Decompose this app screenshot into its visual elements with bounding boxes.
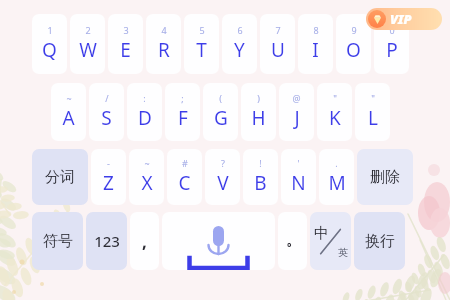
button[interactable]: 3 bbox=[108, 14, 143, 74]
staticText: @ bbox=[292, 92, 301, 104]
button[interactable]: ) bbox=[241, 83, 276, 141]
staticText: W bbox=[79, 37, 97, 63]
button[interactable]: VIP bbox=[366, 8, 442, 30]
staticText: 。 bbox=[286, 232, 300, 250]
staticText: 符号 bbox=[43, 232, 73, 251]
staticText: . bbox=[335, 157, 338, 169]
staticText: L bbox=[368, 105, 378, 131]
button[interactable]: Space and voice input bbox=[162, 212, 275, 270]
staticText: Y bbox=[234, 37, 245, 63]
button[interactable]: ~ bbox=[129, 149, 164, 205]
staticText: M bbox=[328, 170, 346, 196]
staticText: 5 bbox=[199, 24, 205, 36]
staticText: ( bbox=[219, 92, 222, 104]
staticText: 7 bbox=[275, 24, 281, 36]
button[interactable]: 1 bbox=[32, 14, 67, 74]
button[interactable]: 2 bbox=[70, 14, 105, 74]
staticText: ) bbox=[257, 92, 260, 104]
button[interactable]: 5 bbox=[184, 14, 219, 74]
staticText: E bbox=[120, 37, 131, 63]
staticText: ; bbox=[181, 92, 184, 104]
button[interactable]: ( bbox=[203, 83, 238, 141]
staticText: N bbox=[291, 170, 306, 196]
staticText: 分词 bbox=[45, 168, 75, 187]
staticText: " bbox=[333, 92, 337, 104]
button[interactable]: @ bbox=[279, 83, 314, 141]
button[interactable]: Comma bbox=[130, 212, 159, 270]
staticText: C bbox=[178, 170, 191, 196]
staticText: 换行 bbox=[365, 232, 395, 251]
button[interactable]: 0 bbox=[374, 14, 409, 74]
button[interactable]: 123 bbox=[86, 212, 127, 270]
staticText: R bbox=[158, 37, 170, 63]
button[interactable]: 删除 bbox=[357, 149, 413, 205]
staticText: # bbox=[182, 157, 188, 169]
staticText: ? bbox=[221, 157, 225, 169]
staticText: 1 bbox=[47, 24, 53, 36]
staticText: - bbox=[107, 157, 110, 169]
staticText: ~ bbox=[144, 157, 150, 169]
staticText: H bbox=[251, 105, 266, 131]
staticText: " bbox=[371, 92, 375, 104]
button[interactable]: 4 bbox=[146, 14, 181, 74]
staticText: ! bbox=[259, 157, 262, 169]
button[interactable]: . bbox=[319, 149, 354, 205]
staticText: Z bbox=[103, 170, 114, 196]
staticText: B bbox=[254, 170, 267, 196]
button[interactable]: : bbox=[127, 83, 162, 141]
button[interactable]: # bbox=[167, 149, 202, 205]
button[interactable]: 符号 bbox=[32, 212, 83, 270]
staticText: K bbox=[329, 105, 341, 131]
button[interactable]: " bbox=[355, 83, 390, 141]
staticText: 3 bbox=[123, 24, 129, 36]
staticText: 9 bbox=[351, 24, 357, 36]
button[interactable]: Switch Chinese English bbox=[310, 212, 351, 270]
staticText: 4 bbox=[161, 24, 167, 36]
staticText: J bbox=[294, 105, 300, 131]
button[interactable]: " bbox=[317, 83, 352, 141]
staticText: T bbox=[196, 37, 207, 63]
staticText: I bbox=[312, 37, 319, 63]
staticText: 6 bbox=[237, 24, 243, 36]
staticText: 2 bbox=[85, 24, 91, 36]
staticText: X bbox=[141, 170, 153, 196]
button[interactable]: 8 bbox=[298, 14, 333, 74]
button[interactable]: ' bbox=[281, 149, 316, 205]
button[interactable]: 9 bbox=[336, 14, 371, 74]
staticText: O bbox=[346, 37, 361, 63]
button[interactable]: 7 bbox=[260, 14, 295, 74]
staticText: VIP bbox=[390, 10, 412, 28]
button[interactable]: ? bbox=[205, 149, 240, 205]
button[interactable]: ~ bbox=[51, 83, 86, 141]
button[interactable]: 分词 bbox=[32, 149, 88, 205]
staticText: S bbox=[101, 105, 112, 131]
staticText: / bbox=[105, 92, 109, 104]
staticText: U bbox=[271, 37, 285, 63]
button[interactable]: 6 bbox=[222, 14, 257, 74]
staticText: Q bbox=[42, 37, 57, 63]
staticText: 8 bbox=[313, 24, 319, 36]
staticText: 删除 bbox=[370, 168, 400, 187]
staticText: A bbox=[62, 105, 75, 131]
staticText: 中 bbox=[314, 224, 329, 243]
staticText: : bbox=[143, 92, 146, 104]
staticText: V bbox=[217, 170, 229, 196]
button[interactable]: - bbox=[91, 149, 126, 205]
staticText: G bbox=[214, 105, 228, 131]
staticText: ' bbox=[297, 157, 300, 169]
button[interactable]: ; bbox=[165, 83, 200, 141]
staticText: F bbox=[178, 105, 188, 131]
staticText: 123 bbox=[94, 231, 120, 251]
staticText: D bbox=[138, 105, 152, 131]
staticText: P bbox=[386, 37, 398, 63]
staticText: 英 bbox=[338, 246, 348, 259]
button[interactable]: ! bbox=[243, 149, 278, 205]
staticText: 0 bbox=[389, 24, 395, 36]
button[interactable]: 换行 bbox=[354, 212, 405, 270]
staticText: ~ bbox=[66, 92, 72, 104]
button[interactable]: Period bbox=[278, 212, 307, 270]
button[interactable]: / bbox=[89, 83, 124, 141]
staticText: , bbox=[142, 230, 147, 253]
